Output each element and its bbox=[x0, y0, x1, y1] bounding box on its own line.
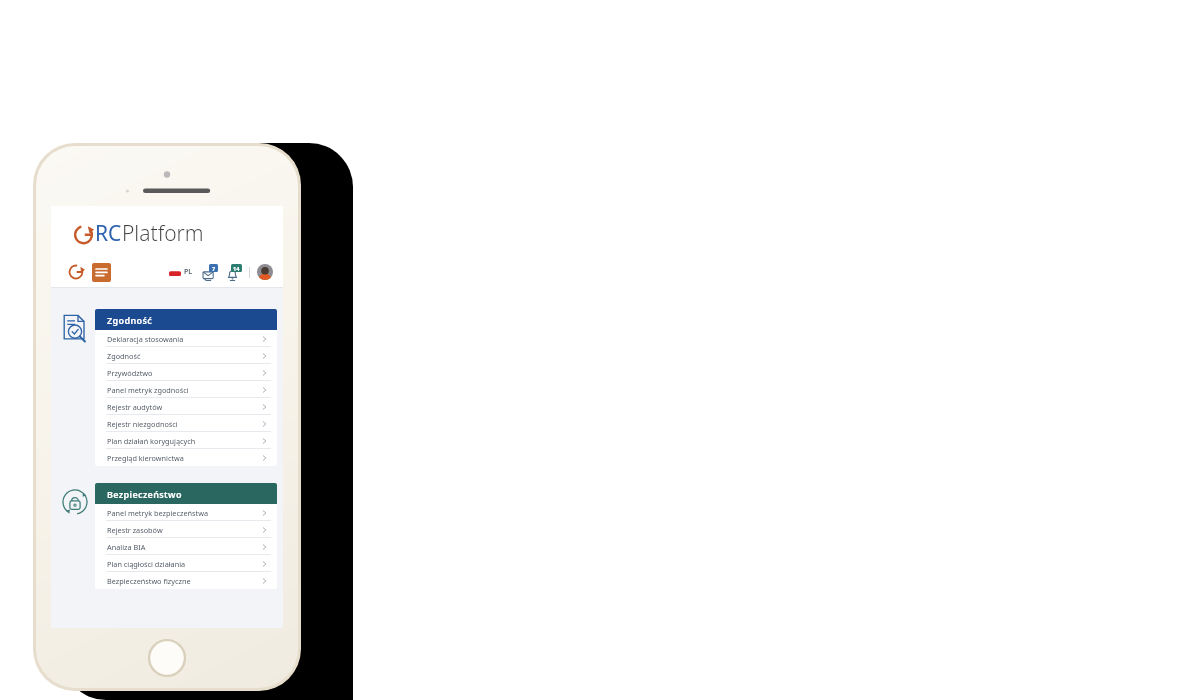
staticText: Bezpieczeństwo fizyczne bbox=[107, 576, 191, 586]
staticText: Zgodność bbox=[107, 314, 153, 326]
staticText: RC bbox=[95, 219, 122, 248]
button[interactable]: Panel metryk bezpieczeństwa bbox=[95, 504, 277, 521]
button[interactable]: Plan ciągłości działania bbox=[95, 555, 277, 572]
staticText: Rejestr audytów bbox=[107, 402, 163, 412]
button[interactable]: Powiadomienia bbox=[226, 264, 242, 281]
staticText: Platform bbox=[122, 219, 204, 248]
staticText: PL bbox=[184, 267, 193, 277]
button[interactable]: Rejestr audytów bbox=[95, 398, 277, 415]
staticText: Plan działań korygujących bbox=[107, 436, 196, 446]
button[interactable]: Przywództwo bbox=[95, 364, 277, 381]
button[interactable]: Zgodność bbox=[95, 309, 277, 330]
button[interactable]: Bezpieczeństwo fizyczne bbox=[95, 572, 277, 589]
button[interactable]: Deklaracja stosowania bbox=[95, 330, 277, 347]
button[interactable]: Wiadomości bbox=[202, 264, 218, 281]
staticText: Plan ciągłości działania bbox=[107, 559, 186, 569]
button[interactable]: Odśwież bbox=[67, 263, 85, 281]
button[interactable]: Plan działań korygujących bbox=[95, 432, 277, 449]
staticText: Rejestr niezgodności bbox=[107, 419, 178, 429]
staticText: Zgodność bbox=[107, 351, 141, 361]
staticText: Przegląd kierownictwa bbox=[107, 453, 184, 463]
staticText: 7 bbox=[212, 265, 216, 272]
button[interactable]: Bezpieczeństwo bbox=[95, 483, 277, 504]
button[interactable]: Zgodność bbox=[95, 347, 277, 364]
button[interactable]: Panel metryk zgodności bbox=[95, 381, 277, 398]
button[interactable]: Analiza BIA bbox=[95, 538, 277, 555]
button[interactable]: Rejestr zasobów bbox=[95, 521, 277, 538]
button[interactable]: Przegląd kierownictwa bbox=[95, 449, 277, 466]
staticText: Przywództwo bbox=[107, 368, 153, 378]
staticText: 14 bbox=[233, 265, 240, 272]
button[interactable]: Profil użytkownika bbox=[257, 264, 273, 280]
button[interactable]: Rejestr niezgodności bbox=[95, 415, 277, 432]
staticText: Deklaracja stosowania bbox=[107, 334, 184, 344]
button[interactable]: Menu bbox=[92, 263, 111, 282]
staticText: Bezpieczeństwo bbox=[107, 488, 182, 500]
staticText: Panel metryk zgodności bbox=[107, 385, 189, 395]
staticText: Analiza BIA bbox=[107, 542, 146, 552]
staticText: Rejestr zasobów bbox=[107, 525, 163, 535]
staticText: Panel metryk bezpieczeństwa bbox=[107, 508, 208, 518]
button[interactable]: PL bbox=[169, 267, 193, 277]
